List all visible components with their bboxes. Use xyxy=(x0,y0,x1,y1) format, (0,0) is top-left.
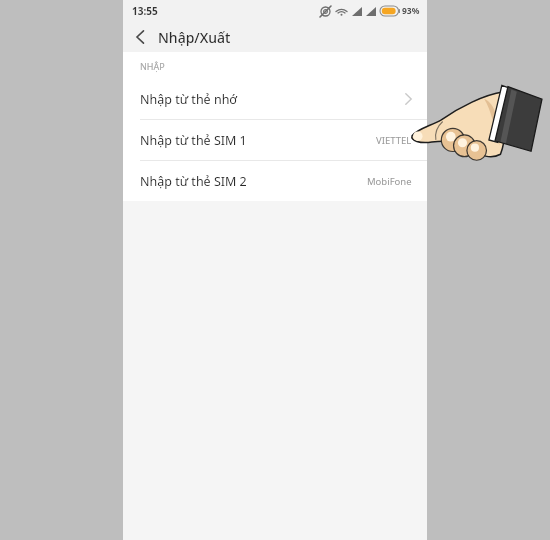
staticText: Nhập từ thẻ SIM 2 xyxy=(140,173,247,190)
button[interactable]: Nhập từ thẻ nhớ xyxy=(123,79,427,119)
staticText: Nhập từ thẻ SIM 1 xyxy=(140,132,247,149)
button[interactable]: Back xyxy=(127,24,153,50)
button[interactable]: Nhập từ thẻ SIM 1 xyxy=(123,120,427,160)
staticText: VIETTEL xyxy=(376,134,412,147)
staticText: 13:55 xyxy=(132,4,158,18)
staticText: NHẬP xyxy=(140,60,165,72)
staticText: 93% xyxy=(402,5,420,17)
staticText: Nhập/Xuất xyxy=(158,28,231,47)
button[interactable]: Nhập từ thẻ SIM 2 xyxy=(123,161,427,201)
staticText: MobiFone xyxy=(367,175,412,188)
staticText: Nhập từ thẻ nhớ xyxy=(140,91,238,108)
